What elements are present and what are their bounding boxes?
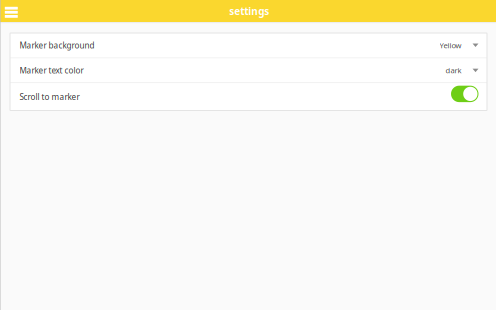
staticText: settings	[229, 4, 269, 18]
staticText: Marker text color	[19, 65, 83, 76]
staticText: dark	[445, 65, 461, 76]
button[interactable]: Marker text color	[10, 58, 487, 82]
staticText: Marker background	[19, 40, 94, 51]
button[interactable]: Marker background	[10, 33, 487, 57]
button[interactable]: Open navigation drawer	[0, 0, 24, 22]
button[interactable]: Scroll to marker	[10, 83, 487, 110]
staticText: Scroll to marker	[19, 91, 79, 102]
staticText: Yellow	[439, 40, 461, 50]
